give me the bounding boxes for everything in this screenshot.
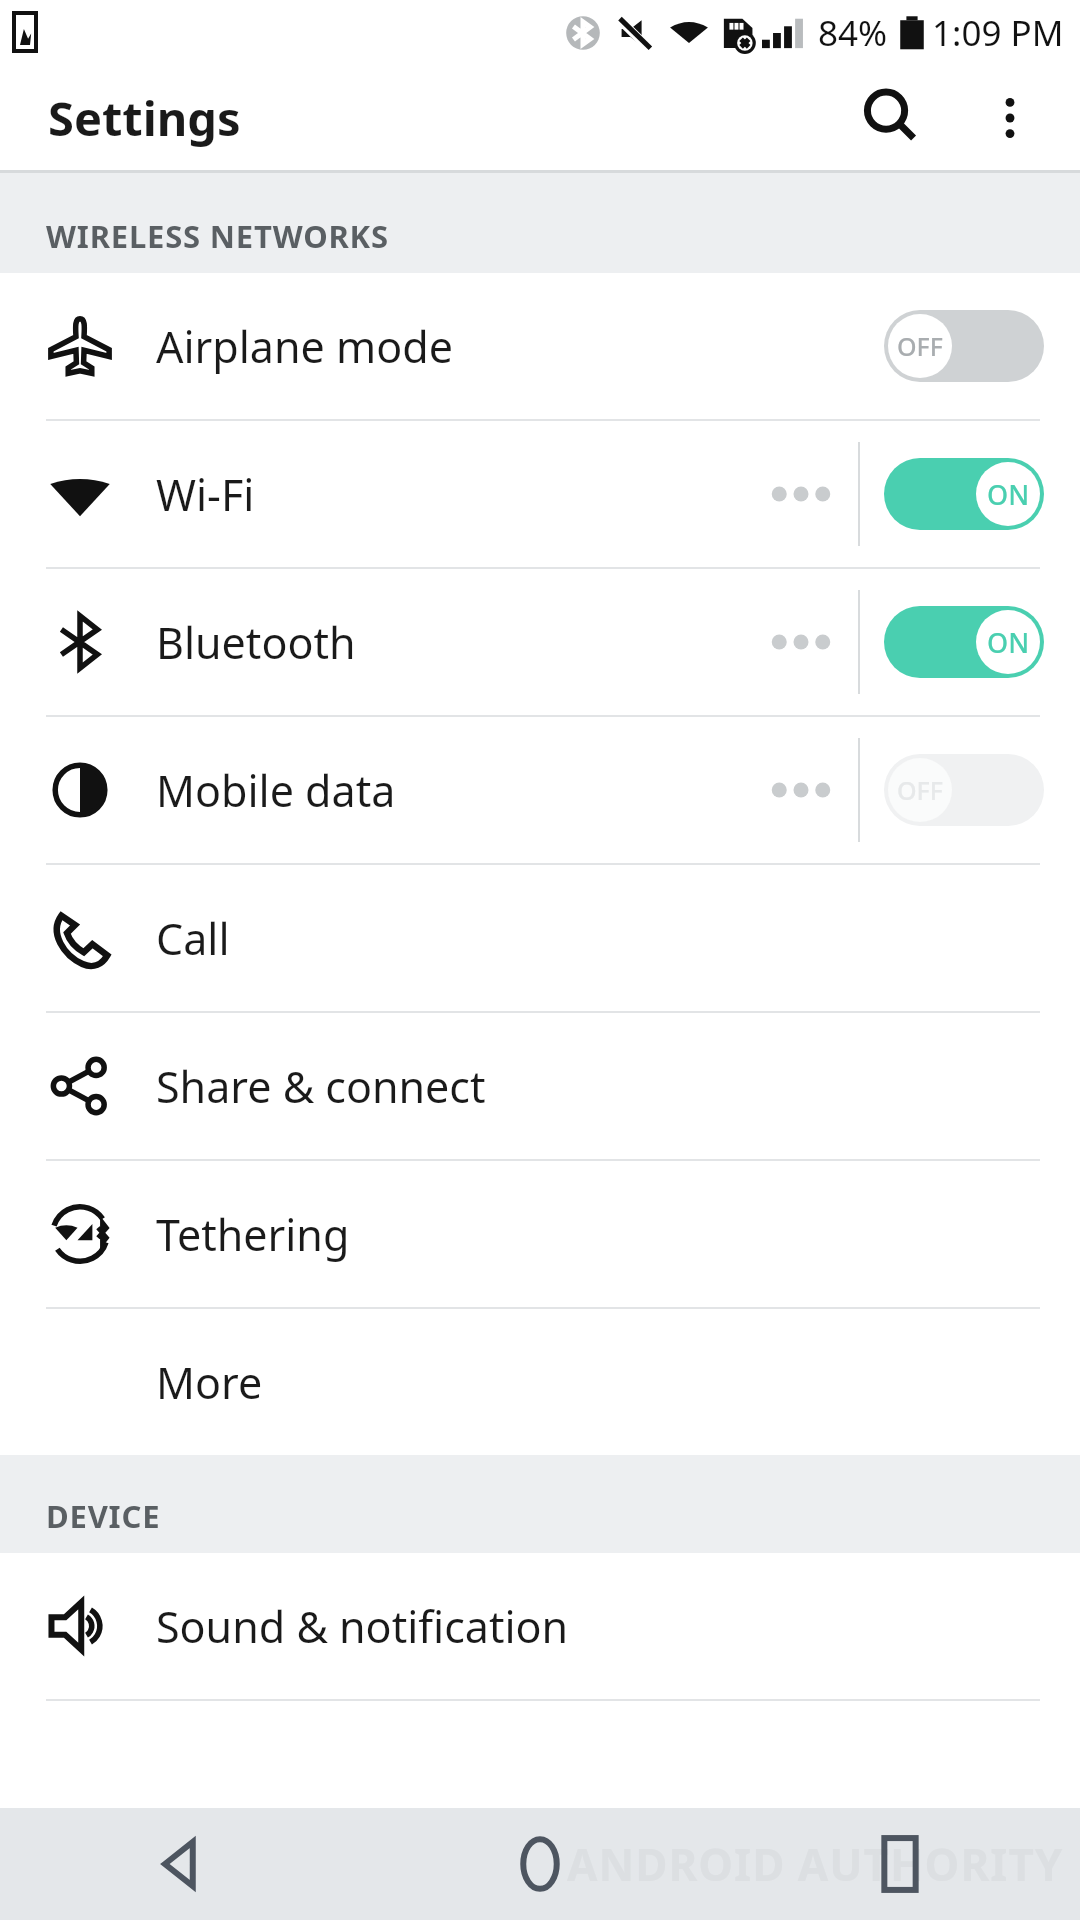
staticText: Share & connect xyxy=(156,1057,486,1116)
staticText: Mobile data xyxy=(156,761,396,820)
button[interactable]: Mobile data xyxy=(0,717,1080,865)
staticText: Sound & notification xyxy=(156,1597,569,1656)
staticText: More xyxy=(156,1353,263,1412)
staticText: DEVICE xyxy=(46,1495,161,1537)
button[interactable]: Mobile data options xyxy=(758,755,844,825)
staticText: Tethering xyxy=(156,1205,350,1264)
button[interactable]: Share & connect xyxy=(0,1013,1080,1161)
staticText: ON xyxy=(987,624,1030,661)
button[interactable]: Sound & notification xyxy=(0,1553,1080,1701)
button[interactable]: Recent apps xyxy=(720,1808,1080,1920)
staticText: Wi-Fi xyxy=(156,465,255,524)
button[interactable]: Home xyxy=(360,1808,720,1920)
staticText: Airplane mode xyxy=(156,317,453,376)
button[interactable]: Wi-Fi xyxy=(0,421,1080,569)
staticText: 84% xyxy=(818,9,888,57)
staticText: 1:09 PM xyxy=(932,9,1064,57)
button[interactable]: On xyxy=(884,458,1044,530)
staticText: WIRELESS NETWORKS xyxy=(46,215,389,257)
staticText: Settings xyxy=(48,86,241,150)
staticText: OFF xyxy=(897,329,944,363)
button[interactable]: Search xyxy=(836,66,946,170)
staticText: Bluetooth xyxy=(156,613,356,672)
staticText: ON xyxy=(987,476,1030,513)
button[interactable]: On xyxy=(884,606,1044,678)
button[interactable]: Airplane mode xyxy=(0,273,1080,421)
button[interactable]: Off xyxy=(884,754,1044,826)
staticText: Call xyxy=(156,909,230,968)
staticText: ANDROID AUTHORITY xyxy=(567,1834,1064,1894)
staticText: OFF xyxy=(897,773,944,807)
button[interactable]: Tethering xyxy=(0,1161,1080,1309)
button[interactable]: Call xyxy=(0,865,1080,1013)
button[interactable]: Wi-Fi options xyxy=(758,459,844,529)
button[interactable]: Back xyxy=(0,1808,360,1920)
button[interactable]: Off xyxy=(884,310,1044,382)
button[interactable]: Bluetooth xyxy=(0,569,1080,717)
button[interactable]: Bluetooth options xyxy=(758,607,844,677)
button[interactable]: More options xyxy=(962,70,1058,166)
button[interactable]: More xyxy=(0,1309,1080,1455)
